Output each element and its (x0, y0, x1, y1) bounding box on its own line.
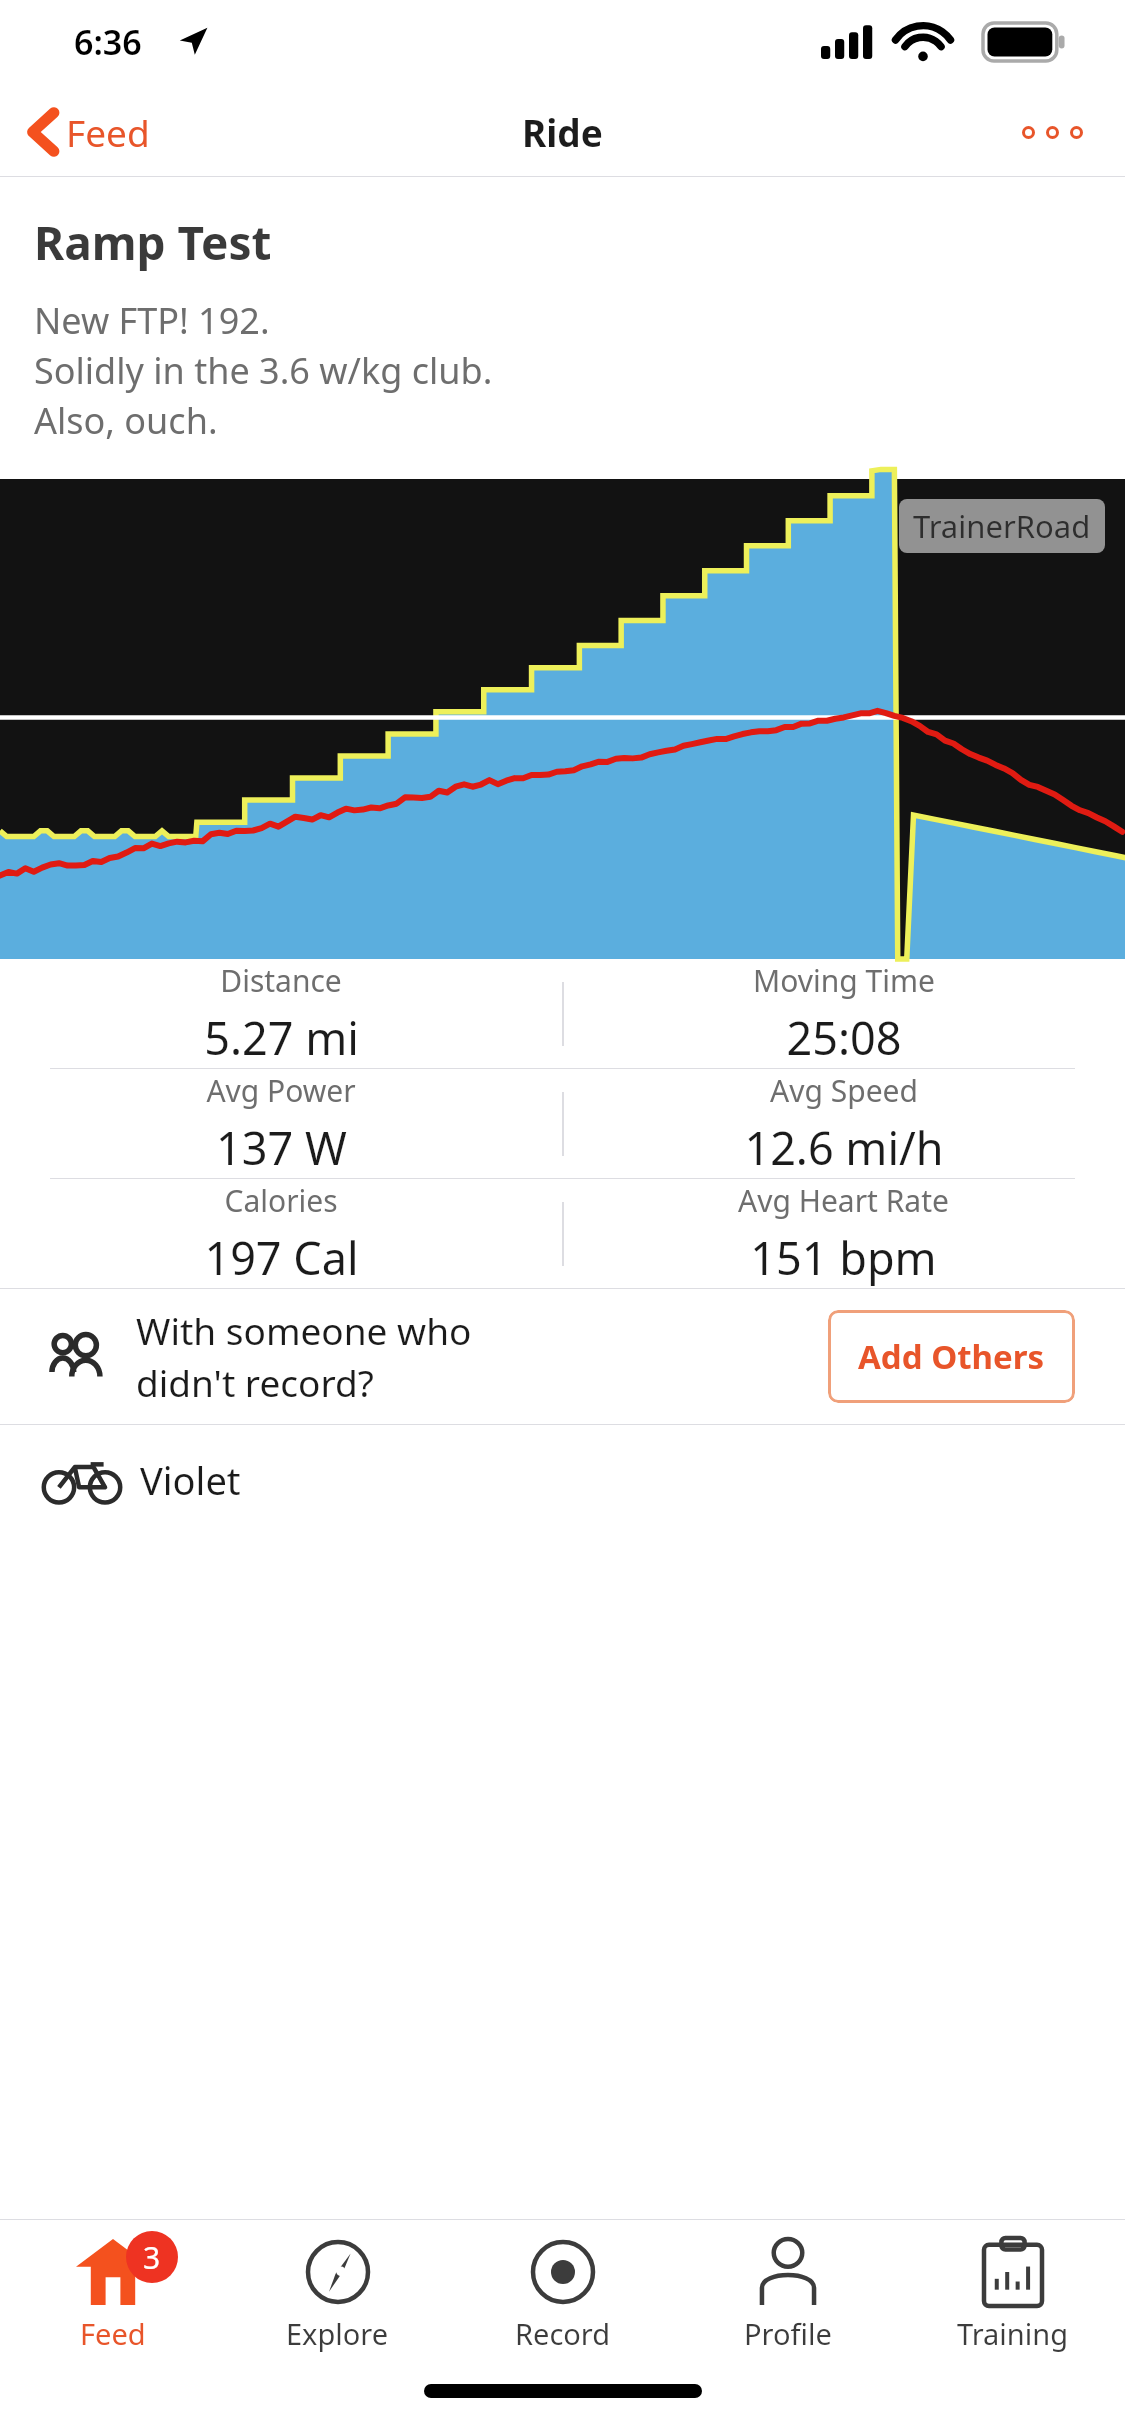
button[interactable]: Calories (0, 1179, 562, 1288)
staticText: Explore (286, 2314, 389, 2353)
button[interactable]: Explore (225, 2220, 450, 2368)
button[interactable]: Add Others (828, 1310, 1075, 1403)
button[interactable]: Avg Speed (562, 1069, 1125, 1178)
staticText: Record (515, 2314, 611, 2353)
staticText: Ramp Test (34, 211, 272, 274)
staticText: 6:36 (74, 19, 142, 65)
button[interactable]: Violet (46, 1425, 1079, 1535)
staticText: Training (957, 2314, 1068, 2353)
staticText: Feed (80, 2314, 146, 2353)
staticText: Add Others (858, 1334, 1045, 1379)
staticText: New FTP! 192. Solidly in the 3.6 w/kg cl… (34, 296, 493, 445)
staticText: Distance (220, 960, 342, 1001)
staticText: 25:08 (786, 1007, 902, 1068)
staticText: Violet (140, 1454, 241, 1506)
staticText: Profile (744, 2314, 832, 2353)
staticText: 3 (143, 2237, 161, 2278)
staticText: Avg Power (206, 1070, 356, 1111)
button[interactable]: Training (900, 2220, 1125, 2368)
staticText: With someone who didn't record? (136, 1305, 828, 1408)
staticText: Calories (224, 1180, 338, 1221)
button[interactable]: Avg Heart Rate (562, 1179, 1125, 1288)
button[interactable]: 3 (0, 2220, 225, 2368)
staticText: Moving Time (753, 960, 935, 1001)
staticText: Avg Speed (770, 1070, 918, 1111)
staticText: TrainerRoad (913, 505, 1091, 547)
button[interactable]: Profile (675, 2220, 900, 2368)
staticText: Ride (522, 107, 603, 157)
button[interactable]: Feed (20, 99, 160, 165)
button[interactable]: Record (450, 2220, 675, 2368)
staticText: 12.6 mi/h (744, 1117, 944, 1178)
staticText: 197 Cal (204, 1227, 359, 1288)
staticText: Avg Heart Rate (738, 1180, 949, 1221)
button[interactable]: More options (1008, 112, 1097, 153)
staticText: 5.27 mi (204, 1007, 359, 1068)
button[interactable]: Avg Power (0, 1069, 562, 1178)
button[interactable]: Moving Time (562, 959, 1125, 1068)
staticText: 151 bpm (750, 1227, 937, 1288)
button[interactable]: Distance (0, 959, 562, 1068)
staticText: Feed (66, 107, 150, 157)
staticText: 137 W (216, 1117, 347, 1178)
